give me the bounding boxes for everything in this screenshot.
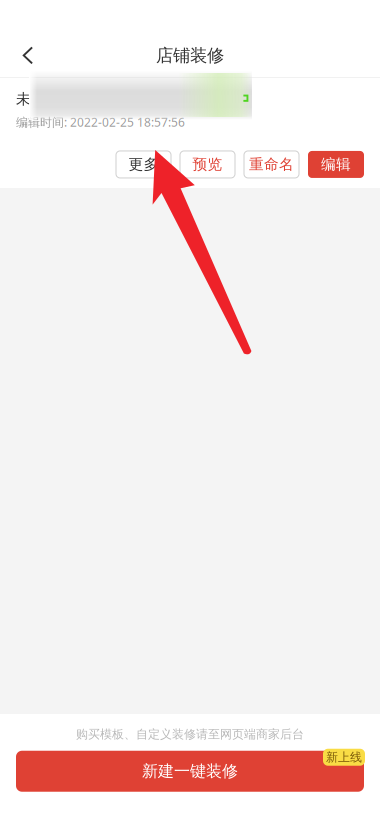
staticText: 未命名模板	[16, 90, 91, 108]
staticText: 预览	[192, 155, 222, 173]
button[interactable]: 更多	[116, 151, 171, 178]
staticText: 更多	[128, 155, 158, 173]
staticText: 购买模板、自定义装修请至网页端商家后台	[76, 727, 304, 742]
button[interactable]: 重命名	[244, 151, 299, 178]
staticText: 编辑时间: 2022-02-25 18:57:56	[16, 114, 185, 130]
staticText: 重命名	[249, 155, 294, 173]
staticText: 编辑	[321, 155, 351, 173]
button[interactable]: 编辑	[308, 151, 364, 178]
staticText: 新建一键装修	[142, 761, 238, 781]
button[interactable]: 新建一键装修	[16, 751, 364, 792]
staticText: 店铺装修	[156, 45, 224, 66]
staticText: 新上线	[326, 750, 362, 765]
button[interactable]: Back	[6, 34, 50, 77]
button[interactable]: 预览	[180, 151, 235, 178]
